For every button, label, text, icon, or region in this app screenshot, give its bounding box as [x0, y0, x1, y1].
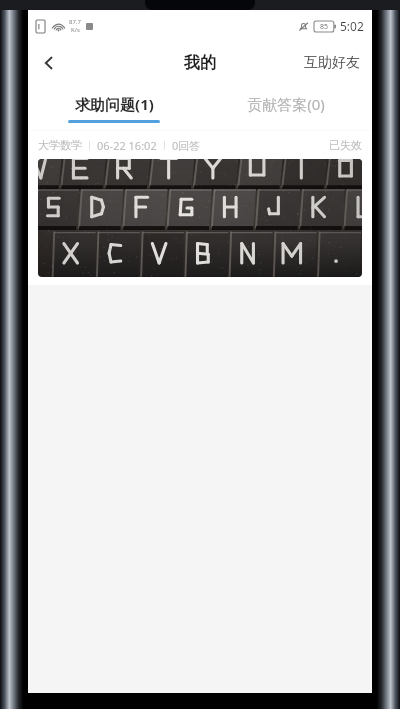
- staticText: 85: [320, 22, 329, 32]
- button[interactable]: 求助问题(1): [28, 84, 200, 130]
- staticText: 06-22 16:02: [97, 138, 157, 153]
- button[interactable]: 贡献答案(0): [200, 84, 372, 130]
- button[interactable]: 互助好友: [292, 42, 372, 84]
- staticText: 大学数学: [38, 138, 82, 152]
- staticText: 5:02: [340, 18, 364, 34]
- staticText: 87.7: [69, 18, 81, 26]
- staticText: 互助好友: [304, 54, 360, 72]
- staticText: 0回答: [172, 138, 201, 153]
- staticText: 我的: [184, 53, 216, 73]
- staticText: K/s: [71, 26, 80, 34]
- staticText: 已失效: [329, 138, 362, 152]
- staticText: 贡献答案(0): [247, 94, 325, 114]
- button[interactable]: Back: [28, 42, 70, 84]
- staticText: 求助问题(1): [75, 94, 154, 114]
- button[interactable]: 大学数学: [28, 131, 372, 285]
